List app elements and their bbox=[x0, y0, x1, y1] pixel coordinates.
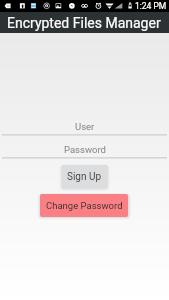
button[interactable]: User bbox=[0, 120, 169, 136]
staticText: Sign Up bbox=[67, 171, 102, 183]
staticText: User bbox=[75, 121, 95, 132]
staticText: Encrypted Files Manager bbox=[7, 15, 161, 31]
button[interactable]: Change Password bbox=[40, 194, 128, 217]
button[interactable]: Sign Up bbox=[62, 165, 107, 188]
staticText: Password bbox=[64, 144, 106, 155]
button[interactable]: Password bbox=[0, 143, 169, 159]
staticText: Change Password bbox=[46, 200, 123, 211]
staticText: 1:24 PM bbox=[135, 1, 167, 11]
